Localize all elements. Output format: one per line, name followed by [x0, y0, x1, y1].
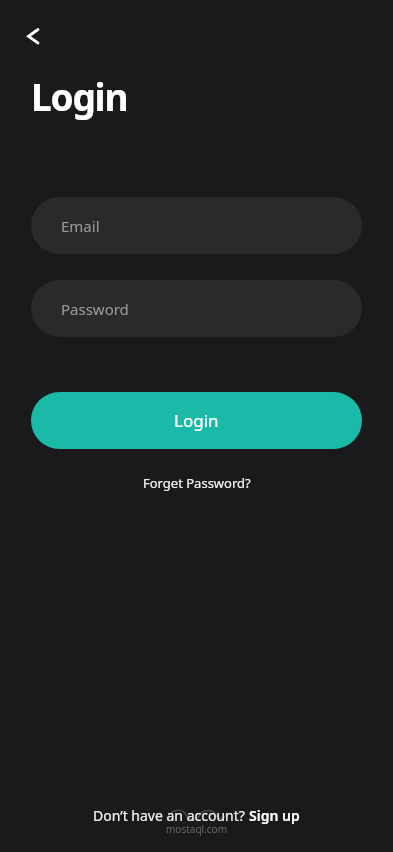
button[interactable]: Password [31, 280, 362, 337]
staticText: Forget Password? [143, 474, 251, 492]
button[interactable]: Sign up [249, 806, 300, 825]
button[interactable]: Email [31, 197, 362, 254]
staticText: Don’t have an account? [93, 806, 249, 825]
button[interactable] [17, 20, 49, 52]
button[interactable]: Forget Password? [137, 468, 257, 498]
staticText: mostaql.com [166, 822, 228, 836]
staticText: Login [174, 409, 219, 432]
staticText: Sign up [249, 806, 300, 825]
staticText: Password [61, 299, 129, 319]
staticText: Email [61, 216, 100, 236]
staticText: Login [31, 71, 128, 121]
button[interactable]: Login [31, 392, 362, 449]
